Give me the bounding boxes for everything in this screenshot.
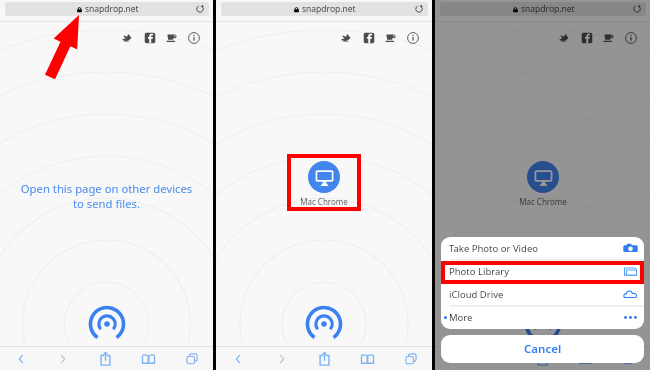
button[interactable]: iCloud Drive xyxy=(441,283,644,306)
button[interactable]: Photo Library xyxy=(441,260,644,283)
button[interactable]: Reload xyxy=(632,4,642,14)
button[interactable]: More xyxy=(441,306,644,329)
button[interactable]: Back xyxy=(435,347,478,370)
button[interactable]: snapdrop.net xyxy=(221,2,428,16)
staticText: snapdrop.net xyxy=(521,3,575,15)
button[interactable]: Forward xyxy=(42,347,84,370)
staticText: Photo Library xyxy=(449,265,510,278)
staticText: Cancel xyxy=(524,341,562,357)
staticText: Take Photo or Video xyxy=(449,242,539,255)
button[interactable]: Reload xyxy=(195,4,205,14)
button[interactable]: Tabs xyxy=(607,347,650,370)
button[interactable]: Forward xyxy=(478,347,521,370)
button[interactable]: Facebook xyxy=(581,32,593,44)
button[interactable]: Bookmarks xyxy=(127,347,170,370)
button[interactable]: snapdrop.net xyxy=(5,2,209,16)
button[interactable]: Twitter xyxy=(341,32,353,44)
button[interactable]: Reload xyxy=(414,4,424,14)
button[interactable]: Buy me a coffee xyxy=(385,32,397,44)
staticText: snapdrop.net xyxy=(302,3,356,15)
button[interactable]: Share xyxy=(521,347,564,370)
button[interactable]: Back xyxy=(216,347,260,370)
button[interactable]: Twitter xyxy=(122,32,134,44)
button[interactable]: About xyxy=(188,32,200,44)
button[interactable]: Bookmarks xyxy=(346,347,389,370)
button[interactable]: Share xyxy=(84,347,127,370)
button[interactable]: snapdrop.net xyxy=(440,2,646,16)
button[interactable]: About xyxy=(407,32,419,44)
staticText: Open this page on other devices to send … xyxy=(0,181,213,211)
button[interactable]: Mac Chrome device xyxy=(284,161,364,207)
button[interactable]: Tabs xyxy=(170,347,213,370)
staticText: iCloud Drive xyxy=(449,288,504,301)
button[interactable]: Back xyxy=(0,347,42,370)
button[interactable]: Buy me a coffee xyxy=(603,32,615,44)
button[interactable]: Cancel xyxy=(441,335,644,363)
staticText: snapdrop.net xyxy=(85,3,139,15)
staticText: Mac Chrome xyxy=(503,196,583,207)
button[interactable]: Facebook xyxy=(144,32,156,44)
button[interactable]: Tabs xyxy=(389,347,432,370)
button[interactable]: About xyxy=(625,32,637,44)
button[interactable]: Facebook xyxy=(363,32,375,44)
button[interactable]: Take Photo or Video xyxy=(441,237,644,260)
button[interactable]: Mac Chrome device xyxy=(503,161,583,207)
staticText: More xyxy=(449,311,473,324)
button[interactable]: Forward xyxy=(260,347,303,370)
button[interactable]: Twitter xyxy=(559,32,571,44)
button[interactable]: Buy me a coffee xyxy=(166,32,178,44)
button[interactable]: Bookmarks xyxy=(564,347,607,370)
staticText: Mac Chrome xyxy=(284,196,364,207)
button[interactable]: Share xyxy=(303,347,346,370)
